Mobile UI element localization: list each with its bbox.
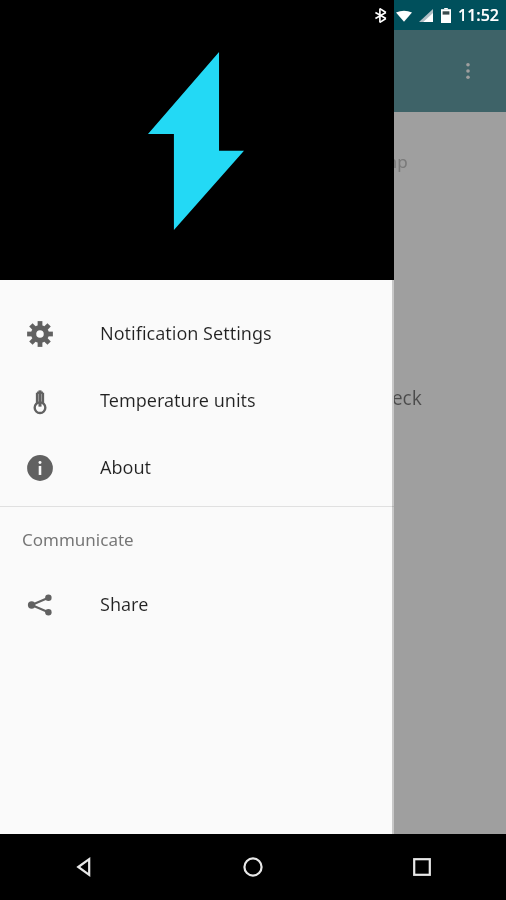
staticText: Notification Settings — [100, 321, 272, 346]
button[interactable]: Notification Settings — [0, 300, 394, 367]
staticText: About — [100, 455, 152, 480]
button[interactable]: Home — [168, 834, 337, 900]
staticText: Current temp — [300, 150, 408, 173]
button[interactable]: Recent apps — [337, 834, 506, 900]
staticText: Share — [100, 592, 149, 617]
button[interactable]: Share — [0, 571, 394, 638]
button[interactable]: More options — [444, 47, 492, 95]
button[interactable]: Back — [0, 834, 168, 900]
button[interactable]: Temperature units — [0, 367, 394, 434]
button[interactable]: About — [0, 434, 394, 501]
button[interactable] — [0, 30, 394, 280]
staticText: Temperature units — [100, 388, 256, 413]
staticText: Communicate — [22, 528, 134, 551]
staticText: Tap the bell to check — [240, 385, 422, 411]
staticText: 11:52 — [458, 4, 499, 26]
button[interactable] — [0, 30, 506, 864]
